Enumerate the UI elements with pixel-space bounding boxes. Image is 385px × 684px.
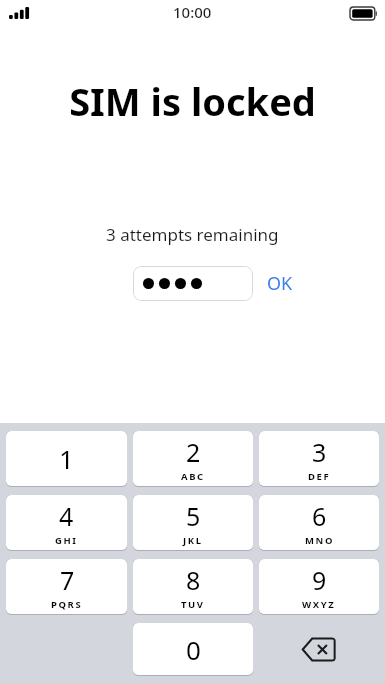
button[interactable]: 6: [259, 495, 379, 550]
button[interactable]: 5: [133, 495, 253, 550]
button[interactable]: Backspace: [256, 619, 382, 680]
button[interactable]: 2: [133, 431, 253, 486]
button[interactable]: 8: [133, 559, 253, 614]
button[interactable]: 3: [259, 431, 379, 486]
staticText: 8: [186, 563, 201, 597]
staticText: 0: [186, 632, 201, 667]
staticText: JKL: [183, 534, 203, 547]
button[interactable]: OK: [263, 265, 297, 302]
staticText: MNO: [305, 534, 334, 547]
staticText: PQRS: [51, 598, 83, 611]
staticText: 7: [60, 563, 75, 597]
staticText: SIM is locked: [69, 75, 316, 127]
staticText: 5: [186, 499, 201, 533]
button[interactable]: 4: [6, 495, 127, 550]
staticText: 4: [59, 499, 74, 533]
staticText: 3: [312, 435, 327, 469]
button[interactable]: 1: [6, 431, 127, 486]
staticText: 9: [312, 563, 327, 597]
staticText: 3 attempts remaining: [106, 223, 279, 246]
staticText: 6: [312, 499, 327, 533]
staticText: TUV: [181, 598, 205, 611]
staticText: WXYZ: [302, 598, 336, 611]
staticText: GHI: [55, 534, 78, 547]
button[interactable]: PIN entry field: [133, 266, 253, 301]
staticText: 2: [186, 435, 201, 469]
staticText: ABC: [181, 470, 205, 483]
button[interactable]: 9: [259, 559, 379, 614]
staticText: 1: [59, 441, 74, 476]
staticText: 10:00: [173, 2, 212, 22]
button[interactable]: 7: [6, 559, 127, 614]
staticText: DEF: [308, 470, 331, 483]
staticText: OK: [267, 271, 293, 296]
button[interactable]: 0: [133, 623, 253, 675]
